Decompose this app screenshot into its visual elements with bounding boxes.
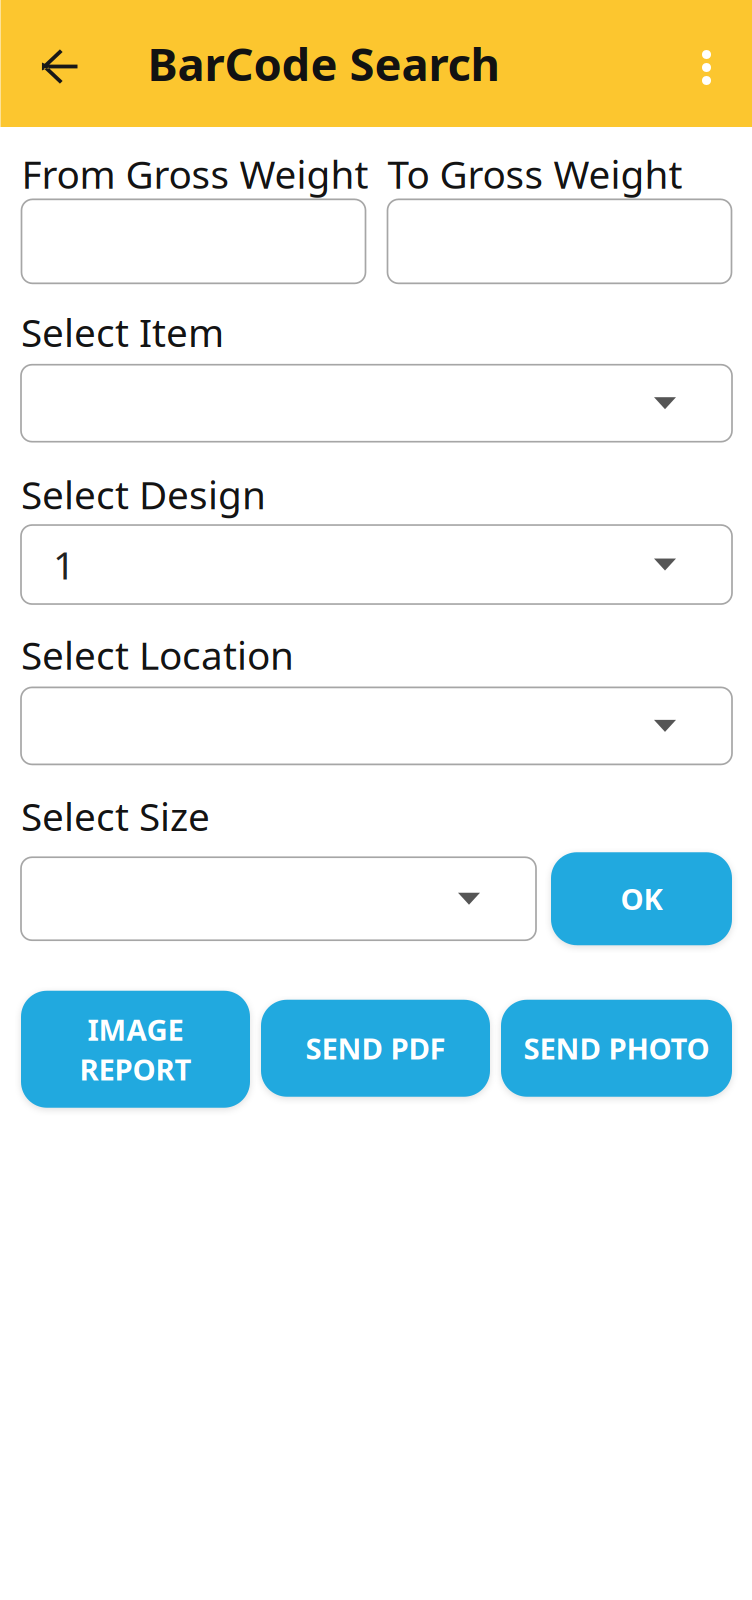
button[interactable]: To Gross Weight bbox=[387, 199, 731, 283]
button[interactable]: More options bbox=[679, 0, 752, 127]
button[interactable]: Select Item bbox=[21, 365, 732, 442]
button[interactable]: Select Design bbox=[21, 525, 732, 604]
staticText: Select Item bbox=[21, 306, 224, 358]
staticText: SEND PHOTO bbox=[523, 1029, 709, 1068]
button[interactable]: OK bbox=[551, 852, 732, 945]
button[interactable]: Back bbox=[0, 0, 147, 127]
staticText: Select Size bbox=[21, 790, 210, 842]
staticText: IMAGE bbox=[87, 1010, 183, 1049]
button[interactable]: From Gross Weight bbox=[21, 199, 365, 283]
staticText: Select Design bbox=[21, 469, 266, 520]
button[interactable]: SEND PHOTO bbox=[501, 1000, 732, 1097]
staticText: 1 bbox=[53, 539, 75, 590]
staticText: OK bbox=[620, 879, 662, 918]
staticText: To Gross Weight bbox=[387, 148, 682, 199]
staticText: SEND PDF bbox=[305, 1029, 445, 1068]
staticText: Select Location bbox=[21, 629, 294, 680]
button[interactable]: Image Report bbox=[21, 991, 250, 1108]
staticText: BarCode Search bbox=[147, 33, 499, 94]
staticText: From Gross Weight bbox=[21, 148, 368, 199]
button[interactable]: Select Location bbox=[21, 687, 732, 764]
staticText: REPORT bbox=[79, 1050, 191, 1089]
button[interactable]: SEND PDF bbox=[261, 1000, 490, 1097]
button[interactable]: Select Size bbox=[21, 857, 536, 940]
